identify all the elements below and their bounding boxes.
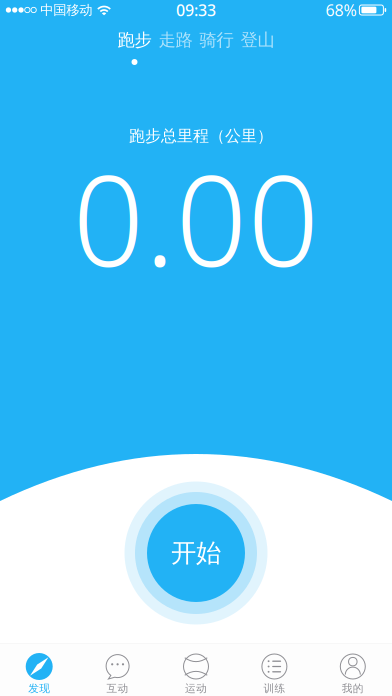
button[interactable]: 训练 [235,643,314,696]
button[interactable]: 运动 [157,643,235,696]
button[interactable]: 我的 [314,643,392,696]
staticText: 68% [325,0,356,21]
staticText: 登山 [240,29,274,51]
staticText: 跑步总里程（公里） [129,126,273,146]
button[interactable]: 骑行 [199,29,234,51]
button[interactable]: 开始 [124,481,267,624]
staticText: 09:33 [176,0,216,21]
button[interactable]: 登山 [240,29,275,51]
button[interactable]: 走路 [158,29,193,51]
button[interactable]: 发现 [0,643,78,696]
staticText: 运动 [185,682,207,695]
staticText: 走路 [158,29,192,51]
staticText: 骑行 [199,29,233,51]
staticText: 互动 [107,682,129,695]
staticText: 开始 [171,537,221,568]
staticText: 中国移动 [40,2,92,18]
button[interactable]: 互动 [78,643,157,696]
staticText: 跑步 [117,29,151,51]
staticText: 发现 [28,682,50,695]
staticText: 训练 [263,682,285,695]
button[interactable]: 跑步 [117,29,152,51]
staticText: 我的 [342,682,364,695]
staticText: 0.00 [72,135,319,301]
